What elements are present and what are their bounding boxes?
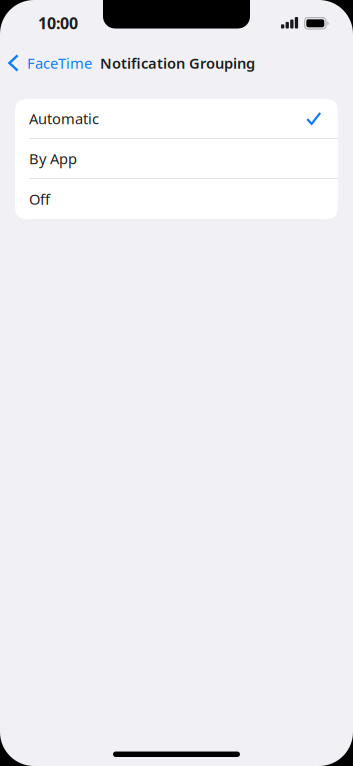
button[interactable]: Off xyxy=(15,179,338,219)
staticText: Off xyxy=(29,189,50,209)
button[interactable]: Automatic xyxy=(15,99,338,139)
staticText: Notification Grouping xyxy=(100,53,255,73)
button[interactable]: By App xyxy=(15,139,338,179)
staticText: 10:00 xyxy=(38,12,78,34)
staticText: Automatic xyxy=(29,109,99,128)
staticText: By App xyxy=(29,149,77,168)
button[interactable]: FaceTime xyxy=(0,46,106,80)
staticText: FaceTime xyxy=(27,53,92,73)
